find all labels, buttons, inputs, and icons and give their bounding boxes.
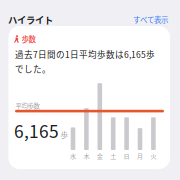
staticText: ハイライト: [8, 13, 53, 26]
staticText: 歩: [60, 129, 67, 140]
staticText: 月: [137, 151, 143, 160]
button[interactable]: すべて表示: [131, 12, 170, 27]
staticText: 過去7日間の1日平均歩数は6,165歩 でした。: [15, 48, 155, 75]
staticText: 火: [150, 151, 156, 160]
staticText: 金: [97, 151, 103, 160]
staticText: 木: [83, 151, 89, 160]
staticText: 土: [110, 151, 116, 160]
staticText: 歩数: [21, 33, 35, 44]
staticText: 6,165: [14, 118, 59, 143]
staticText: すべて表示: [133, 14, 168, 25]
staticText: 水: [70, 151, 76, 160]
staticText: 日: [124, 151, 130, 160]
staticText: 平均歩数: [15, 101, 39, 110]
